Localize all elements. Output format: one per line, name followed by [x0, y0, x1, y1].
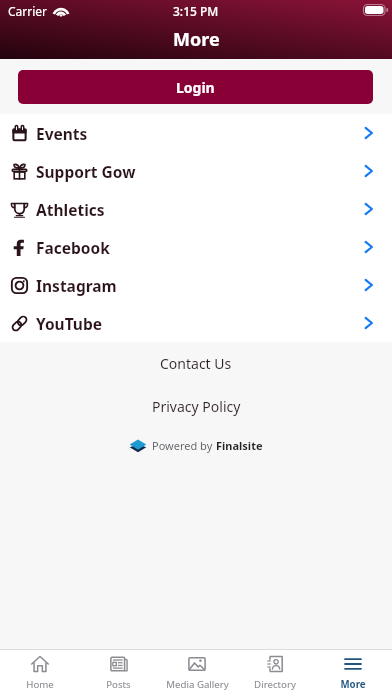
button[interactable]: Privacy Policy — [140, 390, 253, 423]
staticText: 3:15 PM — [173, 3, 219, 19]
staticText: More — [340, 678, 366, 691]
staticText: Home — [26, 678, 54, 691]
staticText: Media Gallery — [166, 678, 229, 691]
staticText: Contact Us — [160, 354, 232, 373]
button[interactable]: Contact Us — [148, 347, 244, 380]
button[interactable]: Facebook — [0, 228, 392, 266]
staticText: Facebook — [36, 237, 110, 258]
button[interactable]: Media Gallery — [158, 650, 236, 696]
button[interactable]: More — [314, 650, 392, 696]
staticText: Privacy Policy — [152, 397, 241, 416]
staticText: YouTube — [36, 313, 102, 334]
button[interactable]: YouTube — [0, 304, 392, 342]
button[interactable]: Instagram — [0, 266, 392, 304]
staticText: Directory — [254, 678, 296, 691]
button[interactable]: Athletics — [0, 190, 392, 228]
button[interactable]: Login — [18, 70, 373, 104]
staticText: Login — [176, 78, 215, 97]
staticText: Carrier — [8, 3, 48, 19]
staticText: Athletics — [36, 199, 105, 220]
staticText: Support Gow — [36, 161, 136, 182]
staticText: Posts — [106, 678, 131, 691]
button[interactable]: Home — [0, 650, 79, 696]
button[interactable]: Events — [0, 114, 392, 152]
staticText: Instagram — [36, 275, 117, 296]
staticText: More — [173, 27, 220, 52]
button[interactable]: Support Gow — [0, 152, 392, 190]
staticText: Events — [36, 123, 88, 144]
staticText: Finalsite — [216, 438, 263, 453]
button[interactable]: Posts — [79, 650, 158, 696]
staticText: Powered by — [152, 438, 216, 453]
button[interactable]: Directory — [236, 650, 314, 696]
